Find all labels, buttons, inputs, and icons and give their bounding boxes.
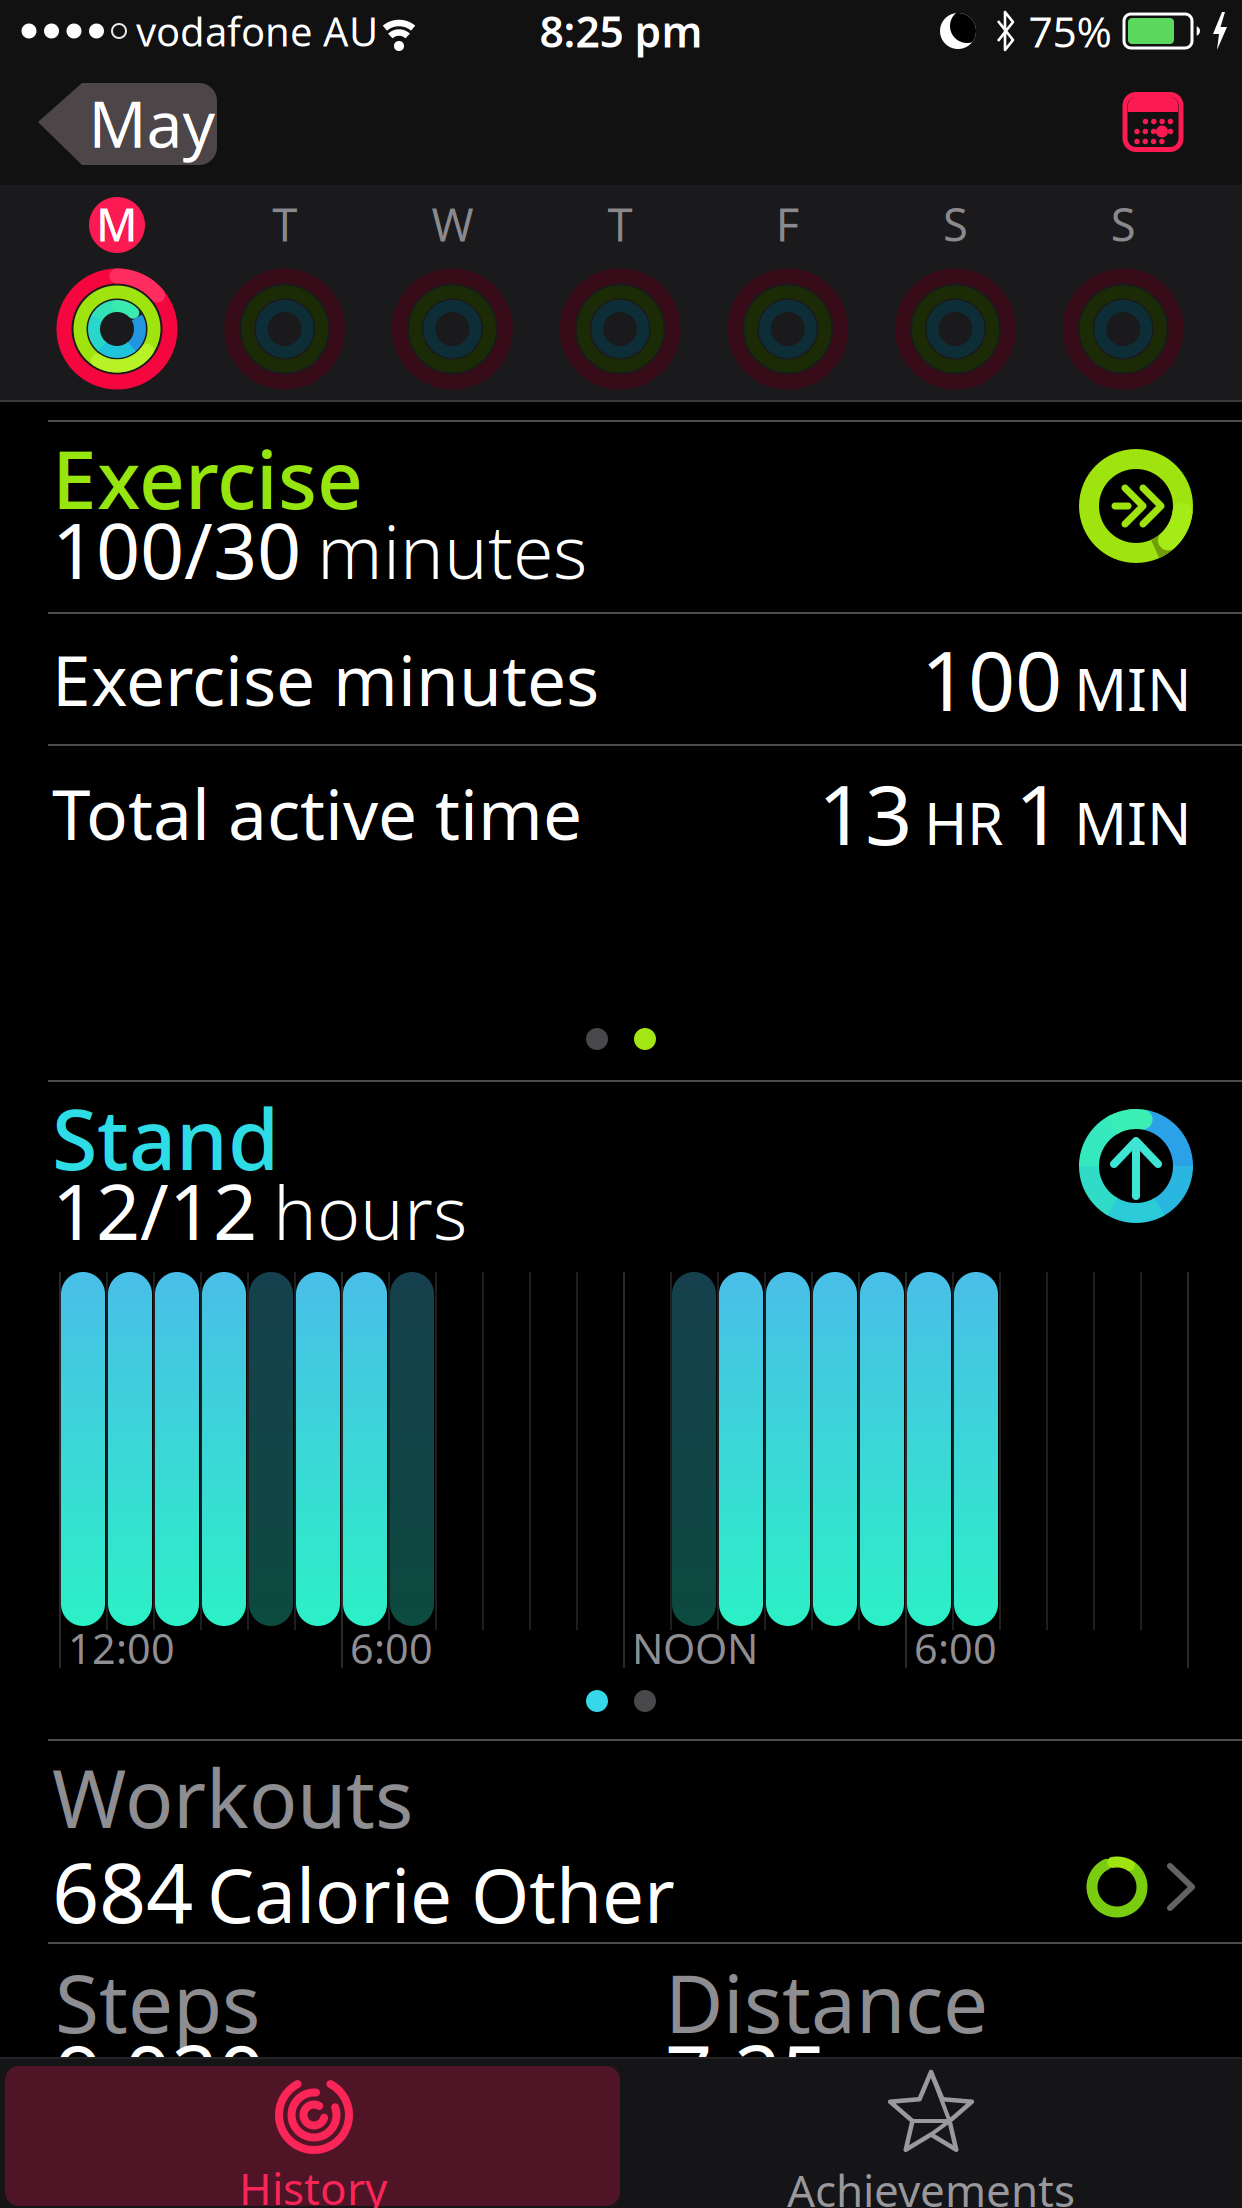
staticText: 12:00 (68, 1621, 175, 1675)
staticText: Stand (52, 1083, 279, 1193)
staticText: 100 (921, 624, 1062, 734)
staticText: 7.25 (665, 2018, 828, 2128)
staticText: Distance (665, 1949, 988, 2055)
staticText: 6:00 (350, 1621, 433, 1675)
button[interactable]: Exercise (52, 422, 1242, 612)
staticText: NOON (632, 1621, 758, 1675)
staticText: 1 (1015, 758, 1062, 868)
button[interactable]: Day S (885, 185, 1025, 401)
staticText: Exercise minutes (52, 633, 599, 725)
button[interactable]: Stand (52, 1082, 1242, 1272)
staticText: W (431, 194, 473, 254)
staticText: HR (924, 783, 1003, 861)
button[interactable]: Day T (215, 185, 355, 401)
staticText: 100/30 (52, 498, 301, 600)
button[interactable]: History (5, 2066, 620, 2206)
staticText: Exercise (52, 425, 363, 531)
staticText: Steps (55, 1949, 260, 2055)
staticText: MIN (1074, 649, 1192, 727)
staticText: Total active time (52, 767, 582, 859)
staticText: 9,020 (55, 2018, 265, 2128)
staticText: 13 (818, 758, 912, 868)
button[interactable]: Day T (550, 185, 690, 401)
staticText: M (96, 194, 138, 254)
staticText: Achievements (787, 2161, 1075, 2208)
staticText: vodafone AU (136, 4, 378, 57)
staticText: hours (273, 1163, 467, 1260)
staticText: Workouts (52, 1744, 413, 1850)
staticText: S (943, 194, 968, 254)
staticText: 12/12 (52, 1159, 257, 1261)
staticText: T (608, 194, 633, 254)
staticText: S (1111, 194, 1136, 254)
button[interactable]: Calendar (1124, 93, 1182, 151)
staticText: 75% (1028, 3, 1111, 59)
staticText: minutes (317, 502, 587, 599)
staticText: 8:25 pm (539, 3, 702, 59)
button[interactable]: Day M (47, 185, 187, 401)
button[interactable]: Achievements (620, 2066, 1242, 2206)
button[interactable]: Day F (718, 185, 858, 401)
staticText: 6:00 (914, 1621, 997, 1675)
button[interactable]: May (36, 79, 217, 169)
staticText: May (88, 80, 215, 165)
button[interactable]: Day S (1053, 185, 1193, 401)
button[interactable]: 684 (52, 1831, 1242, 1943)
staticText: T (272, 194, 297, 254)
staticText: F (776, 194, 800, 254)
staticText: MIN (1074, 783, 1192, 861)
staticText: History (239, 2159, 387, 2208)
button[interactable]: Day W (382, 185, 522, 401)
staticText: Calorie Other (207, 1844, 675, 1944)
staticText: 684 (52, 1836, 193, 1946)
